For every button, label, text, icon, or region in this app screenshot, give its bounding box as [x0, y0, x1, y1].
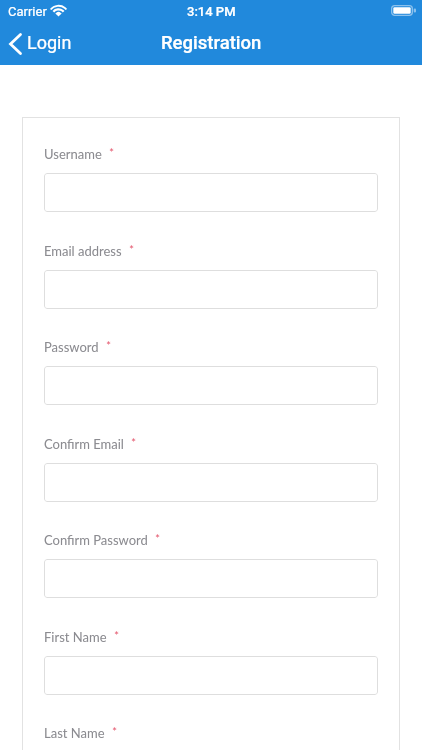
staticText: * — [155, 531, 161, 545]
staticText: * — [114, 628, 120, 642]
other: Back — [9, 33, 22, 55]
staticText: Confirm Email — [44, 436, 124, 452]
staticText: Registration — [161, 32, 262, 54]
button[interactable] — [44, 270, 378, 309]
staticText: * — [112, 724, 118, 738]
staticText: Confirm Password — [44, 532, 148, 548]
button[interactable]: Back — [0, 29, 87, 61]
button[interactable] — [44, 656, 378, 695]
staticText: Email address — [44, 243, 122, 259]
staticText: Username — [44, 146, 102, 162]
staticText: Carrier — [8, 4, 47, 19]
button[interactable] — [44, 559, 378, 598]
staticText: Password — [44, 339, 99, 355]
staticText: 3:14 PM — [187, 4, 236, 19]
staticText: First Name — [44, 629, 107, 645]
button[interactable] — [44, 463, 378, 502]
staticText: * — [106, 338, 112, 352]
button[interactable] — [44, 173, 378, 212]
staticText: * — [109, 145, 115, 159]
staticText: Login — [27, 32, 72, 53]
staticText: Last Name — [44, 725, 105, 741]
staticText: * — [129, 242, 135, 256]
button[interactable] — [44, 366, 378, 405]
staticText: * — [131, 435, 137, 449]
